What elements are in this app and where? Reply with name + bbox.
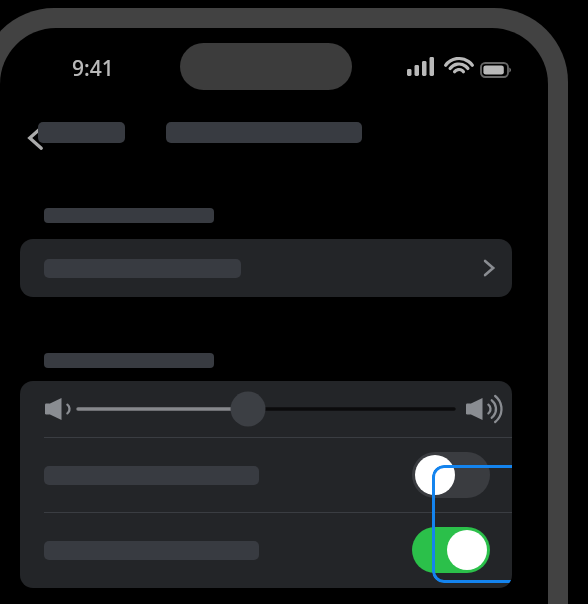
button[interactable]: Back	[14, 116, 58, 160]
button[interactable]: Toggle on	[412, 527, 490, 573]
button[interactable]	[38, 122, 125, 143]
button[interactable]: Toggle off	[412, 452, 490, 498]
staticText: 9:41	[72, 54, 114, 80]
button[interactable]	[20, 239, 512, 297]
button[interactable]: Toggle on	[20, 513, 512, 587]
button[interactable]: Toggle off	[20, 438, 512, 512]
